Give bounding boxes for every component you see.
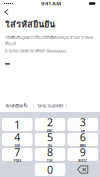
staticText: GHI <box>15 144 20 148</box>
staticText: โทรมาบอกรหัส <box>37 103 63 109</box>
staticText: 5 <box>47 130 53 144</box>
staticText: TUV <box>47 159 53 163</box>
staticText: ส่งรหัสอีกครั้ง <box>5 103 27 109</box>
staticText: 3 <box>80 115 86 129</box>
button[interactable]: 2 <box>35 118 65 131</box>
staticText: 8 <box>47 145 53 159</box>
staticText: WXYZ <box>78 159 87 163</box>
staticText: ABC <box>47 129 53 133</box>
staticText: 9:41 AM <box>41 0 61 7</box>
button[interactable]: 0 <box>35 163 65 176</box>
staticText: ใส่รหัสยืนยัน <box>5 17 55 31</box>
button[interactable]: Delete <box>67 163 98 176</box>
staticText: 1 <box>14 117 20 132</box>
button[interactable]: 1 <box>2 118 32 131</box>
staticText: DEF <box>81 129 85 133</box>
staticText: 4 <box>14 130 20 144</box>
staticText: PQRS <box>14 159 21 163</box>
button[interactable]: 7 <box>2 148 32 161</box>
staticText: 6 <box>80 130 86 144</box>
button[interactable]: 9 <box>67 148 98 161</box>
button[interactable]: 5 <box>35 133 65 146</box>
staticText: รหัสยืนยันถูกส่งไปที่เบอร์มือถือของคุณ ผ… <box>5 34 93 47</box>
staticText: JKL <box>48 144 52 148</box>
button[interactable]: โทรมาบอกรหัส <box>33 100 67 112</box>
staticText: 9 <box>80 145 86 159</box>
button[interactable]: 3 <box>67 118 98 131</box>
staticText: 2 <box>47 115 53 129</box>
button[interactable]: 4 <box>2 133 32 146</box>
button[interactable]: Back <box>1 6 12 17</box>
staticText: MNO <box>80 144 86 148</box>
staticText: 7 <box>14 145 20 159</box>
button[interactable]: ส่งรหัสอีกครั้ง <box>0 100 33 112</box>
button[interactable]: 8 <box>35 148 65 161</box>
button[interactable]: 6 <box>67 133 98 146</box>
staticText: 0 <box>47 162 53 177</box>
staticText: ตามหมายเลขโทรศัพท์ 08XXXXXXXX <box>5 48 66 54</box>
